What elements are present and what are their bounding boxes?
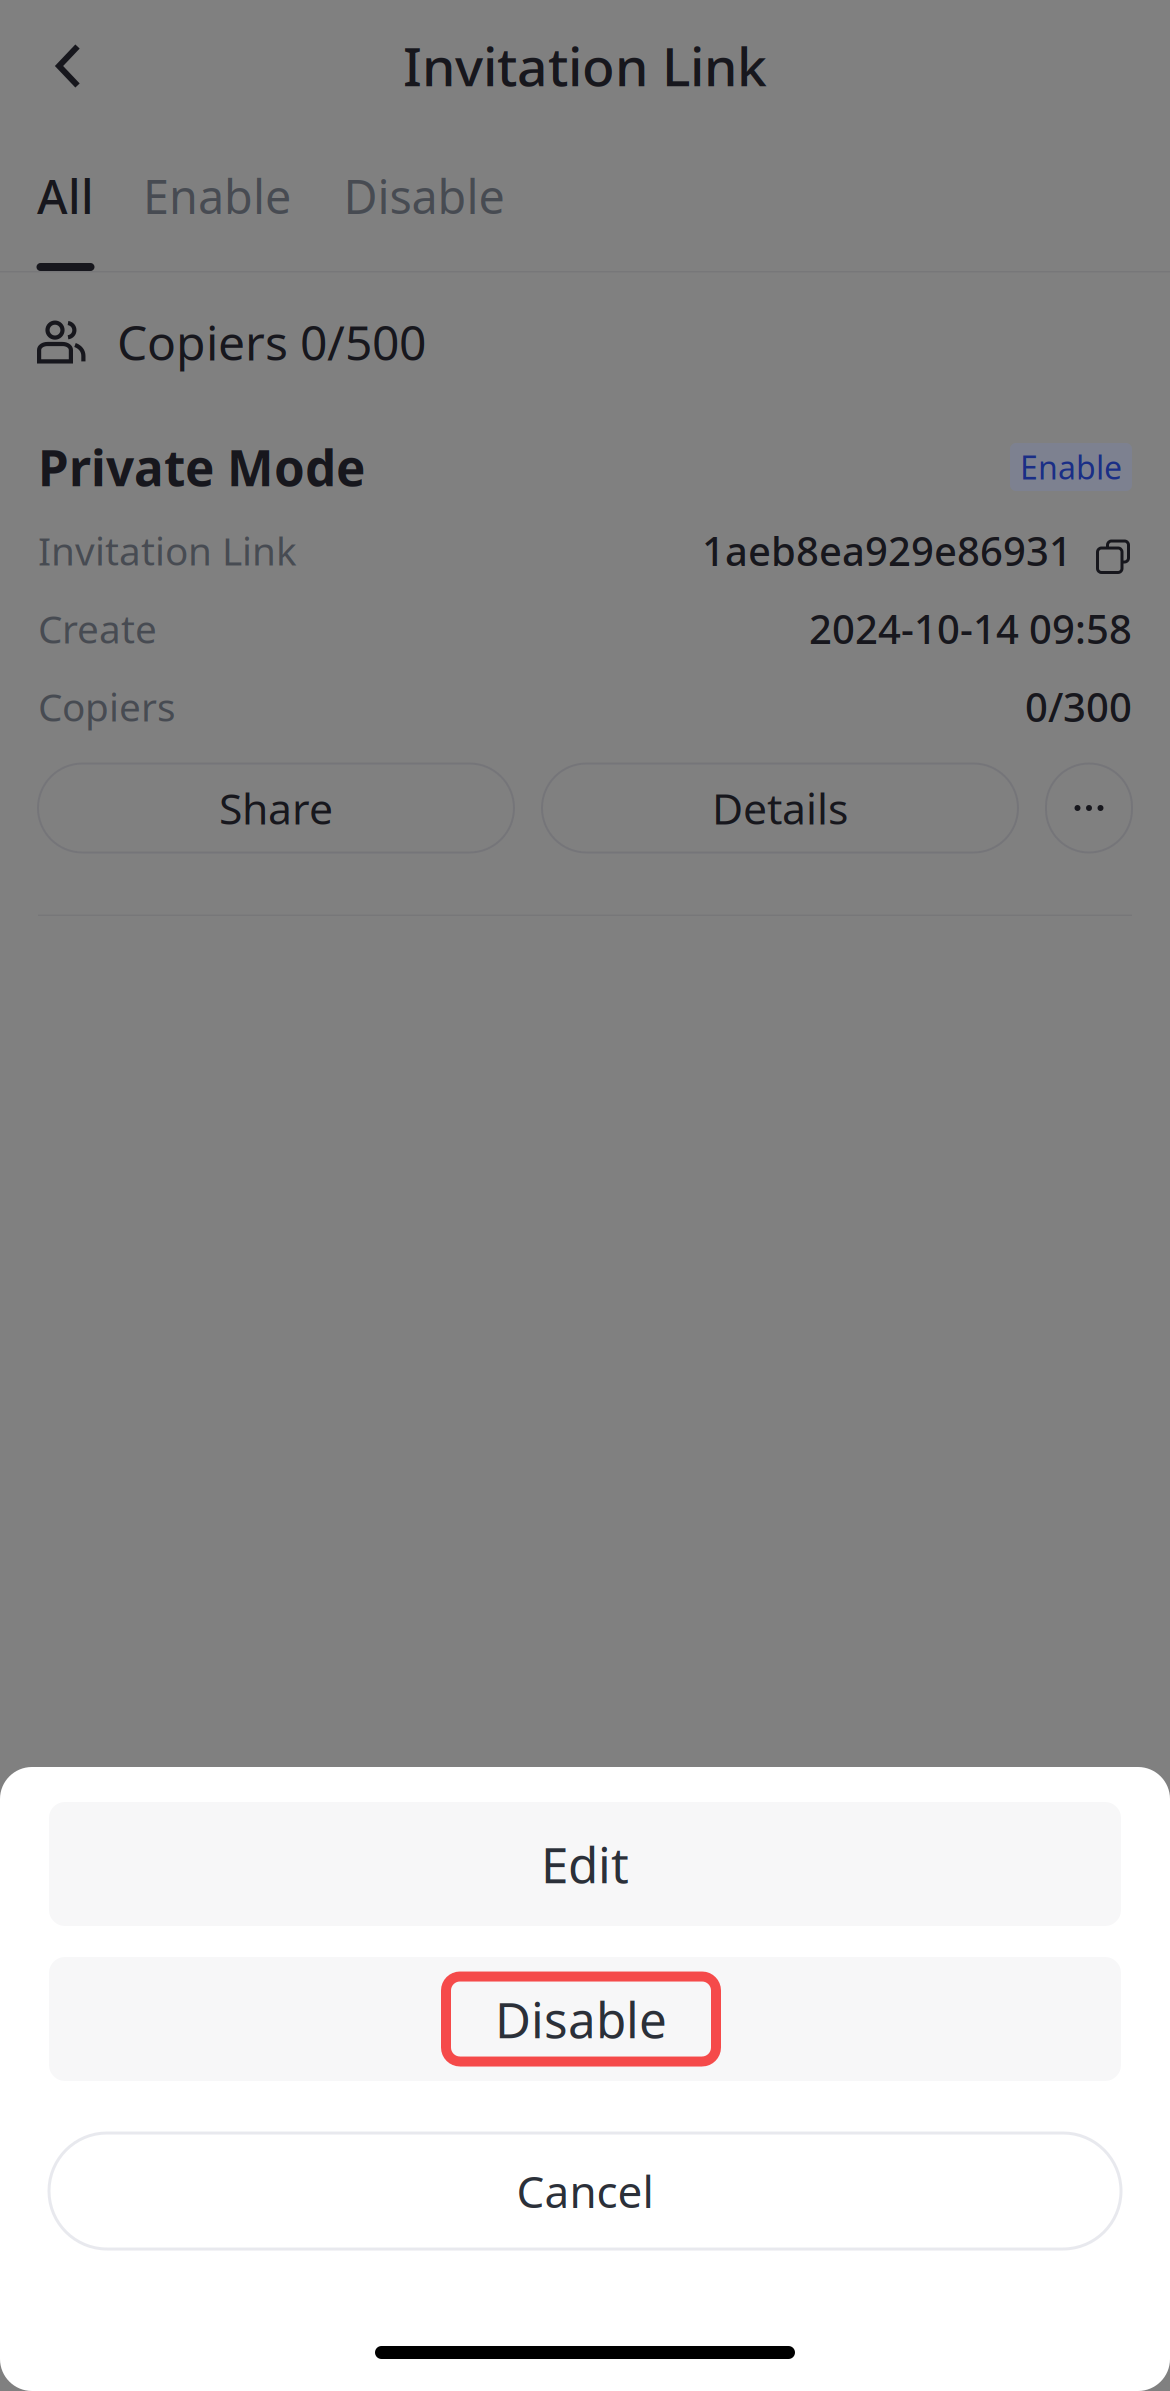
staticText: Edit: [541, 1831, 629, 1897]
staticText: Cancel: [516, 2162, 653, 2220]
button[interactable]: Enable: [1010, 443, 1132, 491]
button[interactable]: Disable: [49, 1957, 1121, 2081]
button[interactable]: Details: [542, 763, 1018, 852]
button[interactable]: Edit: [49, 1802, 1121, 1926]
staticText: Copiers: [38, 681, 176, 732]
staticText: 1aeb8ea929e86931: [702, 524, 1072, 577]
button[interactable]: Back: [55, 9, 81, 121]
staticText: Copiers 0/500: [117, 310, 426, 374]
staticText: Enable: [143, 165, 291, 227]
button[interactable]: Copy invitation link: [1072, 514, 1132, 586]
staticText: Disable: [495, 1986, 667, 2052]
staticText: Invitation Link: [403, 30, 767, 101]
button[interactable]: Enable: [116, 171, 318, 221]
button[interactable]: More options: [1046, 763, 1132, 852]
button[interactable]: All: [15, 171, 116, 271]
staticText: 0/300: [1025, 680, 1132, 733]
staticText: 2024-10-14 09:58: [809, 602, 1132, 655]
staticText: All: [37, 165, 94, 227]
staticText: Details: [712, 780, 848, 836]
staticText: Invitation Link: [38, 525, 297, 576]
button[interactable]: Share: [38, 763, 514, 852]
staticText: Enable: [1020, 446, 1122, 488]
button[interactable]: Cancel: [49, 2133, 1121, 2249]
staticText: Create: [38, 603, 157, 654]
staticText: Share: [219, 780, 333, 836]
staticText: Disable: [343, 165, 504, 227]
staticText: Private Mode: [38, 434, 365, 500]
button[interactable]: Disable: [318, 171, 530, 221]
